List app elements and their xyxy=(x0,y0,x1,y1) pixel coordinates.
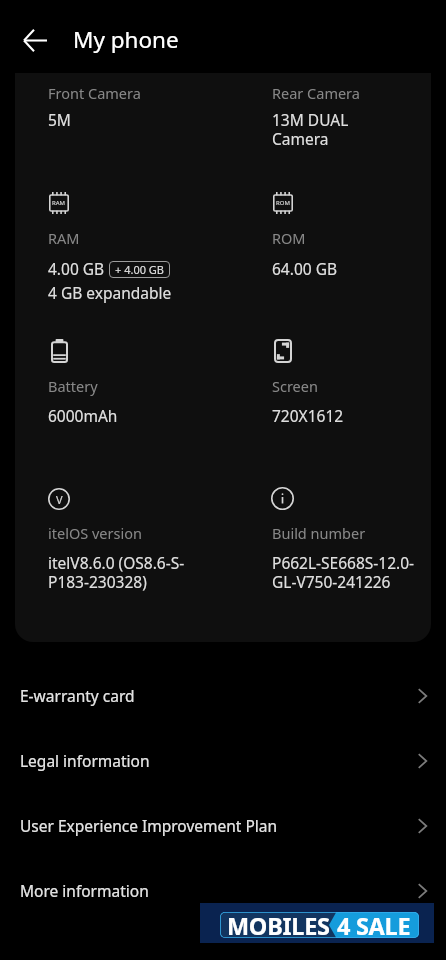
staticText: 5M xyxy=(48,109,71,130)
staticText: ROM xyxy=(276,199,290,207)
staticText: More information xyxy=(20,880,412,901)
button[interactable]: E-warranty card xyxy=(0,663,446,728)
staticText: MOBILES xyxy=(227,912,330,936)
staticText: P662L-SE668S-12.0- GL-V750-241226 xyxy=(272,552,415,592)
staticText: 6000mAh xyxy=(48,405,118,426)
staticText: User Experience Improvement Plan xyxy=(20,815,412,836)
staticText: My phone xyxy=(73,24,179,55)
staticText: 13M DUAL Camera xyxy=(272,109,349,149)
button[interactable]: More information xyxy=(0,858,446,923)
staticText: E-warranty card xyxy=(20,685,412,706)
staticText: 64.00 GB xyxy=(272,258,338,279)
button[interactable]: Legal information xyxy=(0,728,446,793)
staticText: itelOS version xyxy=(48,523,142,543)
staticText: Battery xyxy=(48,376,98,396)
staticText: ROM xyxy=(272,228,306,248)
staticText: 4 GB expandable xyxy=(48,282,172,303)
staticText: Legal information xyxy=(20,750,412,771)
staticText: RAM xyxy=(48,228,80,248)
staticText: 4.00 GB xyxy=(48,258,105,279)
staticText: 720X1612 xyxy=(272,405,344,426)
staticText: Build number xyxy=(272,523,366,543)
staticText: Front Camera xyxy=(48,83,141,103)
staticText: RAM xyxy=(52,199,66,207)
staticText: Rear Camera xyxy=(272,83,360,103)
staticText: Screen xyxy=(272,376,318,396)
button[interactable]: Back xyxy=(10,15,60,65)
staticText: + 4.00 GB xyxy=(115,262,164,277)
staticText: 4 SALE xyxy=(337,912,411,936)
staticText: itelV8.6.0 (OS8.6-S- P183-230328) xyxy=(48,552,185,592)
button[interactable]: User Experience Improvement Plan xyxy=(0,793,446,858)
staticText: V xyxy=(56,492,63,507)
